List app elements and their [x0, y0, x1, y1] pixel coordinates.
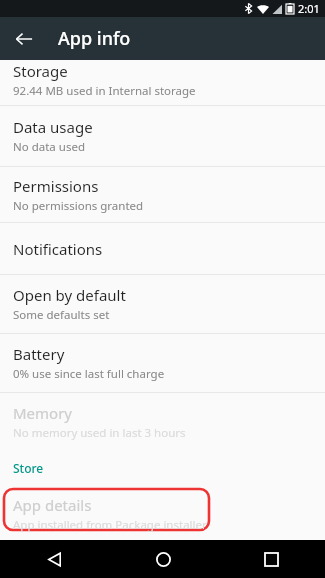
staticText: No memory used in last 3 hours — [13, 425, 186, 441]
staticText: App installed from Package installer — [13, 517, 207, 533]
button[interactable]: Recent apps — [217, 540, 325, 578]
staticText: App details — [13, 495, 92, 515]
button[interactable]: Back — [6, 21, 42, 57]
button[interactable]: Storage — [0, 60, 325, 105]
button[interactable]: Back — [0, 540, 109, 578]
staticText: Permissions — [13, 176, 99, 196]
staticText: Notifications — [13, 239, 103, 259]
button[interactable]: Battery — [0, 334, 325, 392]
button[interactable]: Notifications — [0, 223, 325, 274]
button[interactable]: Open by default — [0, 275, 325, 333]
staticText: 0% use since last full charge — [13, 366, 165, 382]
staticText: App info — [58, 26, 131, 51]
button[interactable]: Data usage — [0, 106, 325, 166]
staticText: Store — [13, 460, 44, 476]
button[interactable]: App details — [13, 495, 207, 533]
staticText: Open by default — [13, 285, 126, 305]
staticText: No permissions granted — [13, 198, 144, 214]
button[interactable]: Store — [13, 460, 44, 476]
button[interactable]: Home — [109, 540, 217, 578]
staticText: 92.44 MB used in Internal storage — [13, 83, 196, 99]
staticText: Some defaults set — [13, 307, 110, 323]
staticText: Data usage — [13, 117, 93, 137]
staticText: No data used — [13, 139, 85, 155]
staticText: Battery — [13, 344, 65, 364]
staticText: Storage — [13, 61, 68, 81]
staticText: 2:01 — [298, 1, 320, 16]
button[interactable]: Memory — [0, 393, 325, 451]
button[interactable]: Permissions — [0, 167, 325, 222]
staticText: Memory — [13, 403, 73, 423]
